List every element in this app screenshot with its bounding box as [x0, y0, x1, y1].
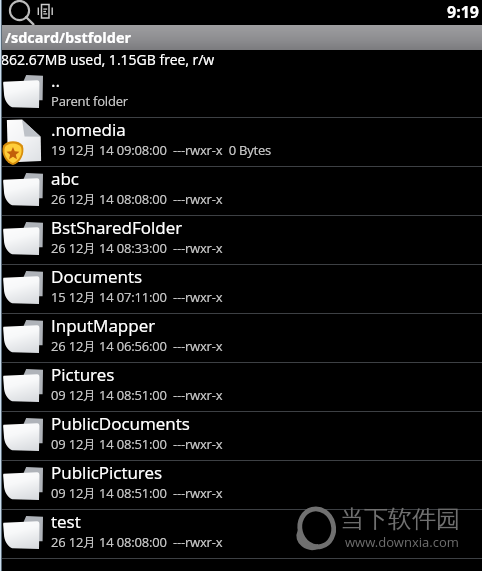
staticText: 15 12月 14 07:11:00 ---rwxr-x: [51, 288, 223, 306]
staticText: 当下软件园: [340, 504, 460, 534]
button[interactable]: InputMapper: [0, 314, 482, 363]
staticText: 26 12月 14 08:33:00 ---rwxr-x: [51, 239, 223, 257]
staticText: ..: [51, 69, 61, 92]
staticText: PublicDocuments: [51, 412, 190, 435]
staticText: 19 12月 14 09:08:00 ---rwxr-x 0 Bytes: [51, 141, 272, 159]
staticText: 26 12月 14 08:08:00 ---rwxr-x: [51, 190, 223, 208]
staticText: 9:19: [447, 1, 479, 23]
staticText: www.downxia.com: [345, 533, 459, 551]
staticText: 862.67MB used, 1.15GB free, r/w: [1, 50, 215, 69]
button[interactable]: ..: [0, 69, 482, 118]
staticText: InputMapper: [51, 314, 156, 337]
staticText: /sdcard/bstfolder: [5, 28, 132, 48]
staticText: 26 12月 14 08:08:00 ---rwxr-x: [51, 533, 223, 551]
button[interactable]: test: [0, 510, 482, 559]
button[interactable]: PublicPictures: [0, 461, 482, 510]
staticText: PublicPictures: [51, 461, 163, 484]
staticText: Pictures: [51, 363, 115, 386]
staticText: Documents: [51, 265, 143, 288]
button[interactable]: PublicDocuments: [0, 412, 482, 461]
staticText: BstSharedFolder: [51, 216, 183, 239]
staticText: 09 12月 14 08:51:00 ---rwxr-x: [51, 484, 223, 502]
staticText: test: [51, 510, 81, 533]
other: Search: [0, 0, 36, 25]
staticText: Parent folder: [51, 92, 128, 110]
staticText: 09 12月 14 08:51:00 ---rwxr-x: [51, 386, 223, 404]
staticText: 26 12月 14 06:56:00 ---rwxr-x: [51, 337, 223, 355]
button[interactable]: Pictures: [0, 363, 482, 412]
staticText: .nomedia: [51, 118, 126, 141]
button[interactable]: BstSharedFolder: [0, 216, 482, 265]
staticText: 09 12月 14 08:51:00 ---rwxr-x: [51, 435, 223, 453]
other: Vibrate mode: [36, 0, 56, 25]
button[interactable]: .nomedia: [0, 118, 482, 167]
button[interactable]: Documents: [0, 265, 482, 314]
staticText: abc: [51, 167, 79, 190]
button[interactable]: abc: [0, 167, 482, 216]
